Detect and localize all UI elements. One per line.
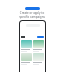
button[interactable] — [21, 53, 32, 65]
button[interactable] — [33, 40, 44, 52]
button[interactable] — [37, 36, 44, 38]
button[interactable] — [25, 7, 40, 10]
button[interactable] — [33, 53, 44, 65]
button[interactable] — [21, 40, 32, 52]
staticText: Create or apply to specific campaigns — [18, 11, 46, 18]
